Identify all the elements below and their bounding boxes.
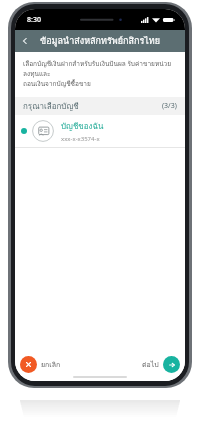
staticText: xxx-x-x3574-x [61,135,100,143]
button[interactable]: บัญชีของฉัน [15,115,185,147]
staticText: ยกเลิก [41,359,61,370]
button[interactable]: ยกเลิก [20,356,61,373]
staticText: ข้อมูลนำส่งหลักทรัพย์กสิกรไทย [40,34,160,48]
staticText: กรุณาเลือกบัญชี [23,100,79,113]
staticText: 8:30 [27,15,41,25]
staticText: บัญชีของฉัน [61,120,104,133]
staticText: เลือกบัญชีเงินฝากสำหรับรับเงินปันผล รับค… [23,59,177,89]
button[interactable]: Back [15,31,35,51]
staticText: ต่อไป [142,359,159,370]
button[interactable]: ต่อไป [142,356,180,373]
staticText: (3/3) [162,101,177,111]
